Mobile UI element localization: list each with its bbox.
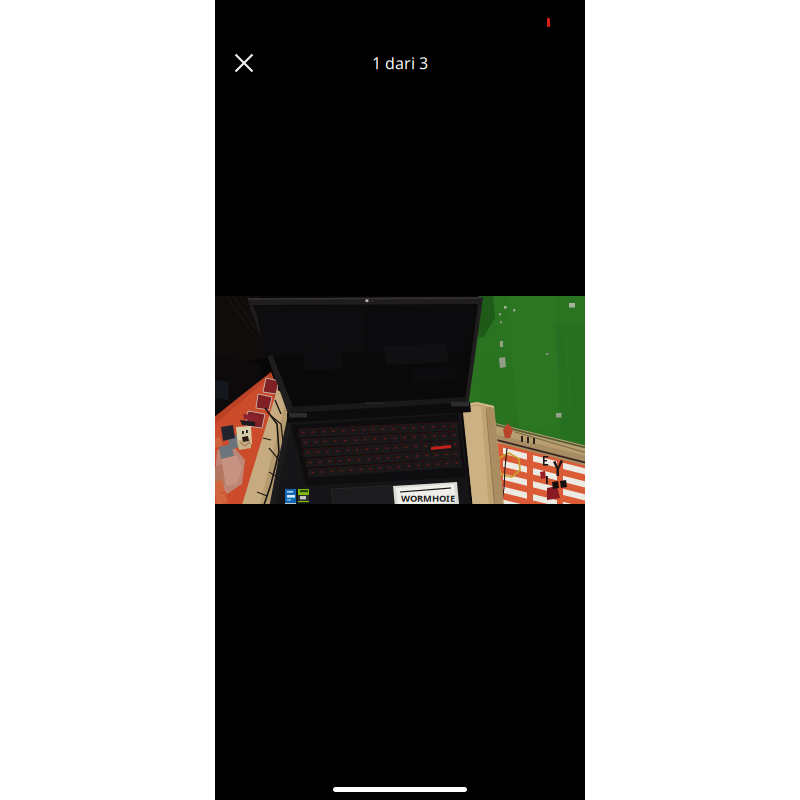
button[interactable]: Close xyxy=(222,41,266,85)
staticText: WORMHOIE xyxy=(401,492,455,504)
staticText: 1 dari 3 xyxy=(372,52,428,74)
